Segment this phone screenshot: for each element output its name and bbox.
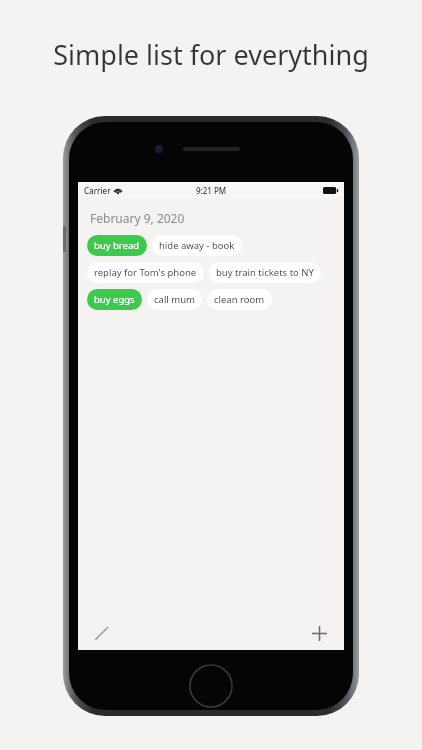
button[interactable]: buy bread <box>87 235 147 256</box>
button[interactable]: call mum <box>147 289 202 310</box>
button[interactable]: buy eggs <box>87 289 142 310</box>
button[interactable]: Edit <box>91 622 113 644</box>
staticText: 9:21 PM <box>196 185 227 196</box>
staticText: Carrier <box>84 185 111 196</box>
staticText: buy bread <box>94 239 140 252</box>
staticText: replay for Tom's phone <box>94 266 197 279</box>
other: Home <box>189 664 233 708</box>
staticText: call mum <box>154 293 195 306</box>
button[interactable]: clean room <box>207 289 272 310</box>
staticText: clean room <box>214 293 265 306</box>
staticText: buy eggs <box>94 293 135 306</box>
button[interactable]: Add <box>307 621 331 645</box>
button[interactable]: buy train tickets to NY <box>209 262 321 283</box>
staticText: Simple list for everything <box>53 36 369 73</box>
staticText: hide away - book <box>159 239 235 252</box>
staticText: February 9, 2020 <box>90 210 185 226</box>
staticText: buy train tickets to NY <box>216 266 314 279</box>
button[interactable]: hide away - book <box>152 235 242 256</box>
button[interactable]: replay for Tom's phone <box>87 262 204 283</box>
